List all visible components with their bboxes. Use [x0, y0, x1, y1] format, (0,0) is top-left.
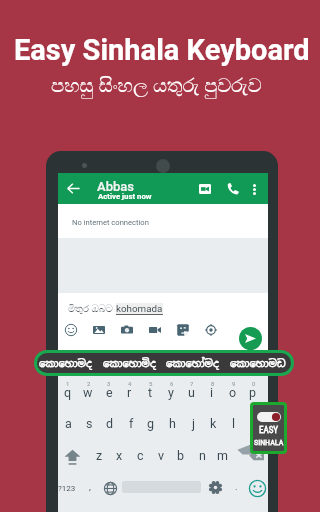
staticText: 0	[252, 380, 256, 387]
staticText: m	[217, 448, 228, 463]
staticText: p	[249, 385, 257, 400]
staticText: කොහොමිද	[103, 357, 156, 370]
staticText: Easy Sinhala Keyboard	[14, 33, 310, 67]
button[interactable]: d	[100, 410, 120, 436]
button[interactable]: n	[192, 442, 212, 468]
button[interactable]: e	[99, 379, 119, 405]
button[interactable]: k	[203, 410, 223, 436]
staticText: EASY	[259, 425, 279, 436]
staticText: o	[229, 385, 237, 400]
button[interactable]: i	[202, 379, 222, 405]
button[interactable]: b	[171, 442, 191, 468]
button[interactable]: More options	[246, 181, 262, 197]
staticText: j	[192, 416, 195, 431]
button[interactable]: EASY	[253, 405, 284, 451]
button[interactable]: Video call	[196, 180, 214, 198]
button[interactable]: Back	[62, 177, 85, 200]
staticText: n	[199, 448, 206, 463]
button[interactable]: c	[130, 442, 150, 468]
staticText: g	[147, 416, 155, 431]
button[interactable]: s	[79, 410, 99, 436]
button[interactable]: Backspace	[245, 444, 267, 466]
button[interactable]: y	[161, 379, 181, 405]
staticText: No internet connection	[72, 218, 149, 227]
staticText: u	[188, 385, 195, 400]
staticText: 6	[170, 380, 174, 387]
button[interactable]: Emoji keyboard	[246, 477, 268, 499]
button[interactable]: f	[121, 410, 141, 436]
staticText: මිතුර ඔබට	[68, 302, 116, 315]
button[interactable]: t	[140, 379, 160, 405]
staticText: 3	[107, 380, 111, 387]
button[interactable]: j	[183, 410, 203, 436]
staticText: v	[158, 448, 165, 463]
staticText: ?123	[58, 484, 76, 493]
button[interactable]: Gallery	[90, 321, 108, 339]
staticText: d	[106, 416, 114, 431]
staticText: කොහෝමද	[166, 357, 219, 370]
staticText: 5	[149, 380, 153, 387]
staticText: Abbas	[97, 179, 135, 194]
staticText: 4	[128, 380, 132, 387]
button[interactable]: v	[151, 442, 171, 468]
button[interactable]: l	[224, 410, 244, 436]
button[interactable]: Video	[146, 321, 164, 339]
staticText: c	[137, 448, 144, 463]
staticText: කොහොමද	[39, 357, 92, 370]
staticText: w	[83, 385, 93, 400]
button[interactable]: q	[58, 379, 78, 405]
staticText: ,	[89, 481, 91, 492]
staticText: y	[168, 385, 174, 400]
button[interactable]: h	[162, 410, 182, 436]
button[interactable]: .	[222, 475, 250, 497]
staticText: .	[235, 481, 238, 492]
staticText: kohomada	[116, 303, 163, 314]
button[interactable]: Call	[224, 180, 242, 198]
staticText: q	[64, 385, 72, 400]
button[interactable]: Send	[239, 327, 262, 350]
button[interactable]: w	[78, 379, 98, 405]
button[interactable]: m	[212, 442, 232, 468]
button[interactable]: Switch language	[99, 477, 121, 499]
button[interactable]: Settings	[204, 476, 226, 498]
button[interactable]: Camera	[118, 321, 136, 339]
staticText: 1	[66, 380, 70, 387]
staticText: කොහොමඩ	[230, 357, 286, 370]
staticText: l	[232, 416, 236, 431]
button[interactable]: Shift	[61, 446, 83, 468]
button[interactable]: o	[223, 379, 243, 405]
button[interactable]: ,	[76, 475, 104, 497]
staticText: 7	[190, 380, 194, 387]
staticText: 8	[211, 380, 215, 387]
staticText: i	[210, 385, 214, 400]
button[interactable]: Emoji	[62, 321, 80, 339]
staticText: r	[127, 385, 132, 400]
button[interactable]: r	[119, 379, 139, 405]
button[interactable]: a	[58, 410, 78, 436]
staticText: Active just now	[98, 192, 152, 201]
staticText: b	[177, 448, 185, 463]
staticText: z	[96, 448, 103, 463]
button[interactable]: Sticker	[174, 321, 192, 339]
button[interactable]: z	[89, 442, 109, 468]
staticText: s	[86, 416, 93, 431]
staticText: පහසු සිංහල යතුරු පුවරුව	[51, 71, 262, 98]
staticText: SINHALA	[254, 438, 284, 447]
staticText: 2	[87, 380, 91, 387]
button[interactable]: කොහොමද	[37, 353, 291, 373]
button[interactable]: Location	[202, 321, 220, 339]
button[interactable]: ?123	[53, 477, 81, 499]
button[interactable]: g	[141, 410, 161, 436]
button[interactable]: p	[243, 379, 263, 405]
staticText: h	[169, 416, 176, 431]
staticText: x	[116, 448, 123, 463]
staticText: f	[129, 416, 134, 431]
staticText: k	[210, 416, 217, 431]
button[interactable]: u	[181, 379, 201, 405]
staticText: e	[106, 385, 113, 400]
button[interactable]: x	[109, 442, 129, 468]
staticText: 9	[232, 380, 236, 387]
staticText: a	[65, 416, 72, 431]
staticText: t	[148, 385, 153, 400]
